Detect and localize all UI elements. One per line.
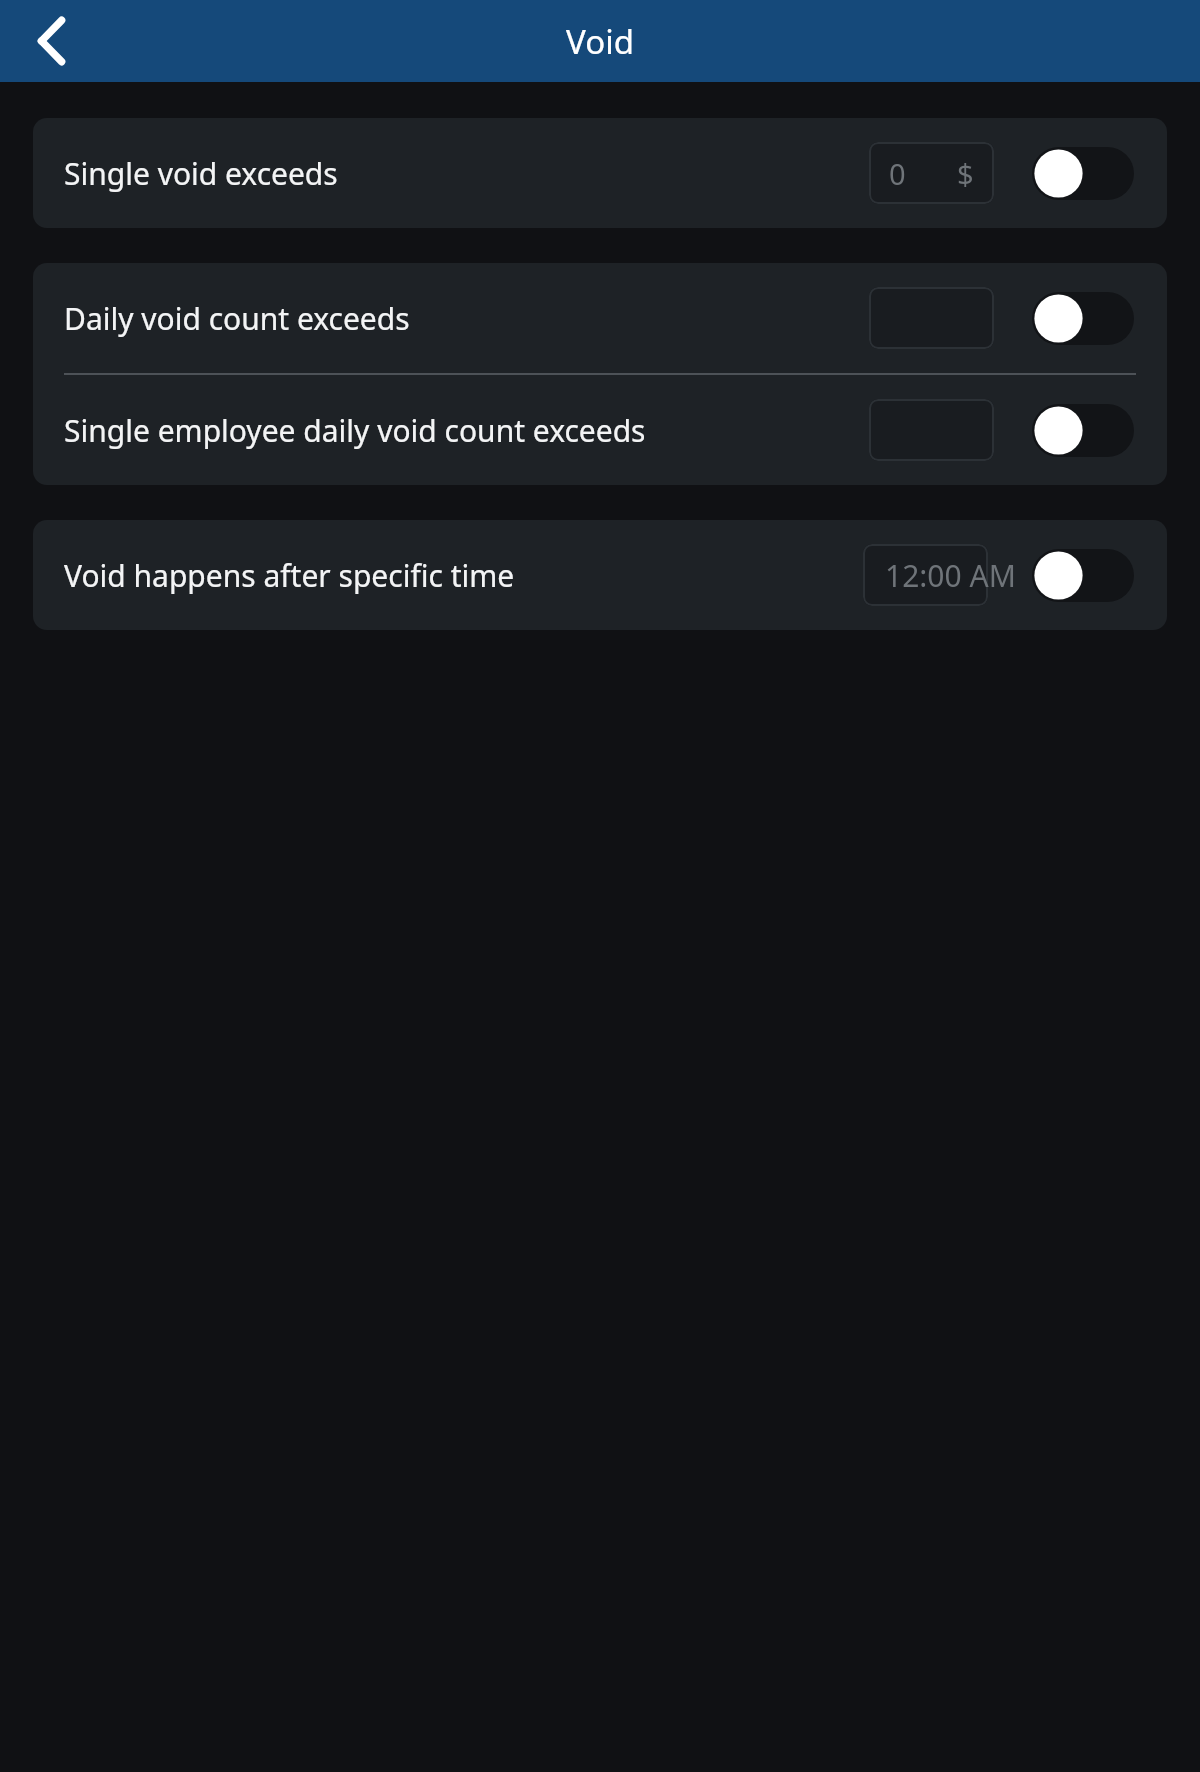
- button[interactable]: [869, 399, 994, 461]
- button[interactable]: Back: [14, 3, 90, 79]
- staticText: 0: [889, 154, 906, 193]
- staticText: Void happens after specific time: [64, 555, 863, 596]
- button[interactable]: Toggle setting: [1032, 549, 1134, 602]
- button[interactable]: 0: [869, 142, 994, 204]
- staticText: Single employee daily void count exceeds: [64, 410, 869, 451]
- staticText: 12:00 AM: [885, 555, 1016, 596]
- button[interactable]: Single void exceeds: [33, 118, 1167, 228]
- button[interactable]: [863, 544, 988, 606]
- button[interactable]: Single employee daily void count exceeds: [33, 375, 1167, 485]
- button[interactable]: Daily void count exceeds: [33, 263, 1167, 373]
- button[interactable]: Toggle setting: [1032, 292, 1134, 345]
- staticText: Single void exceeds: [64, 153, 869, 194]
- staticText: Daily void count exceeds: [64, 298, 869, 339]
- staticText: Void: [566, 19, 634, 64]
- button[interactable]: [869, 287, 994, 349]
- button[interactable]: Toggle setting: [1032, 147, 1134, 200]
- button[interactable]: Toggle setting: [1032, 404, 1134, 457]
- staticText: $: [957, 154, 974, 193]
- button[interactable]: Void happens after specific time: [33, 520, 1167, 630]
